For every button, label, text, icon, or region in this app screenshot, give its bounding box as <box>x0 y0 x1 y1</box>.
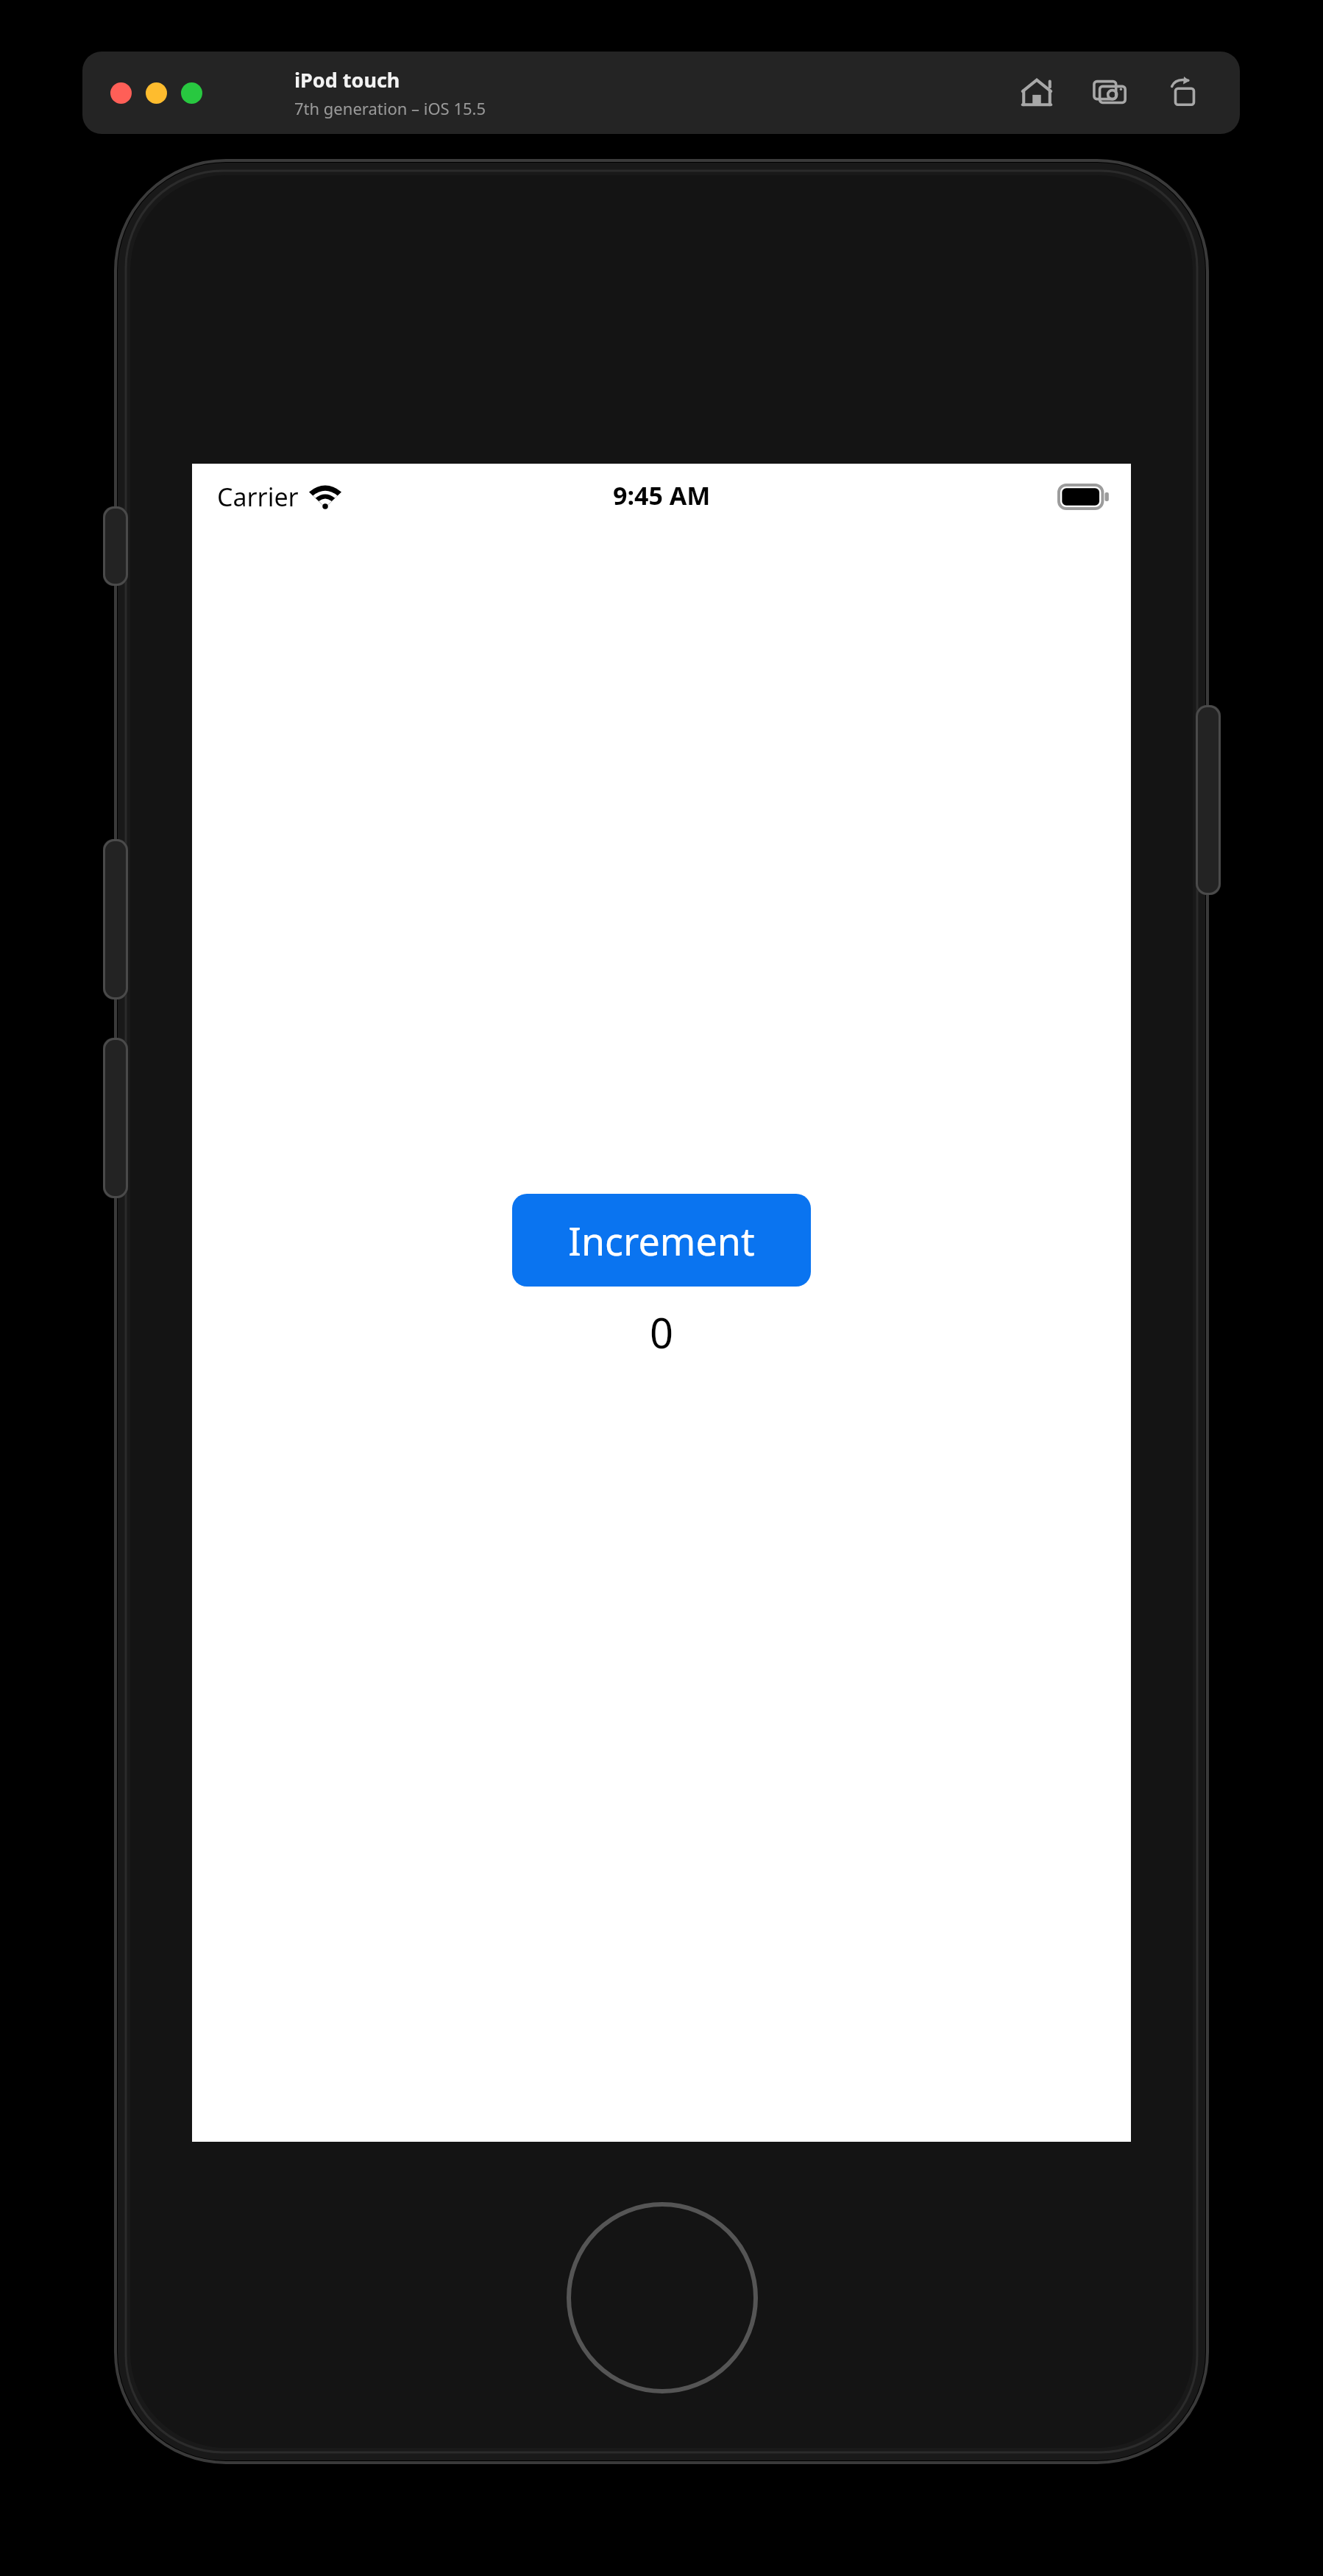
button[interactable]: Zoom <box>181 82 202 104</box>
staticText: iPod touch <box>294 66 400 93</box>
button[interactable]: Screenshot <box>1084 66 1137 119</box>
staticText: Carrier <box>217 480 299 514</box>
staticText: 7th generation – iOS 15.5 <box>294 97 486 119</box>
button[interactable]: Close <box>110 82 132 104</box>
button[interactable]: Home <box>567 2202 758 2393</box>
staticText: Increment <box>568 1214 755 1267</box>
staticText: 0 <box>650 1304 674 1360</box>
button[interactable]: Minimise <box>146 82 167 104</box>
button[interactable]: Increment <box>512 1194 811 1287</box>
button[interactable]: Rotate <box>1157 66 1210 119</box>
staticText: 9:45 AM <box>613 478 711 512</box>
button[interactable]: Home <box>1010 66 1063 119</box>
